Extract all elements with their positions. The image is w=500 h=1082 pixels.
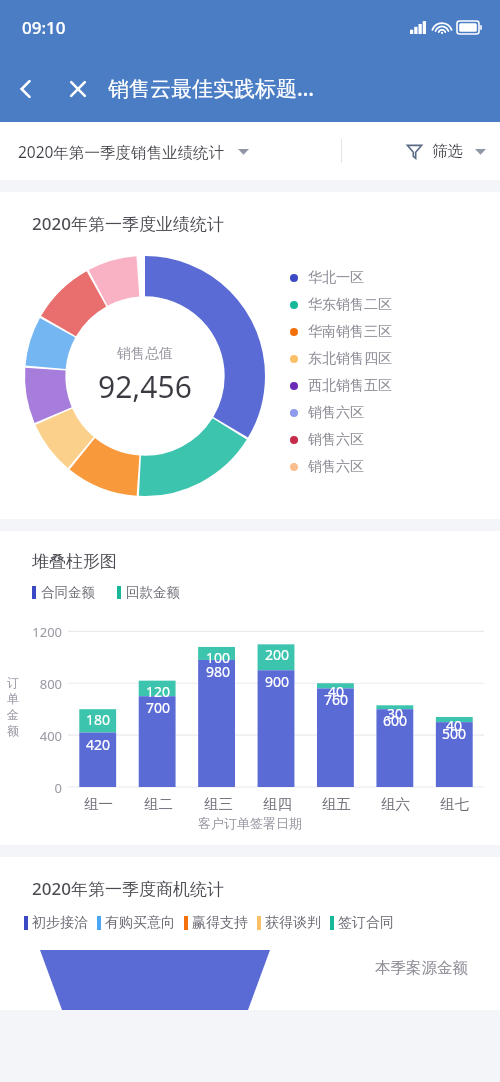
- staticText: 2020年第一季度销售业绩统计: [18, 141, 224, 162]
- staticText: 华东销售二区: [308, 296, 392, 314]
- staticText: 初步接洽: [32, 914, 88, 932]
- staticText: 0: [22, 779, 62, 797]
- staticText: 西北销售五区: [308, 377, 392, 395]
- staticText: 100: [206, 648, 231, 667]
- staticText: 400: [22, 727, 62, 745]
- staticText: 销售六区: [308, 404, 364, 422]
- staticText: 合同金额: [41, 584, 95, 601]
- staticText: 华南销售三区: [308, 323, 392, 341]
- staticText: 800: [22, 675, 62, 693]
- staticText: 赢得支持: [192, 914, 248, 932]
- staticText: 30: [387, 704, 404, 723]
- staticText: 有购买意向: [105, 914, 175, 932]
- staticText: 销售六区: [308, 431, 364, 449]
- staticText: 东北销售四区: [308, 350, 392, 368]
- staticText: 1200: [22, 623, 62, 641]
- staticText: 2020年第一季度业绩统计: [32, 212, 224, 235]
- staticText: 销售总值: [117, 345, 173, 363]
- staticText: 客户订单签署日期: [0, 815, 500, 831]
- staticText: 09:10: [22, 16, 66, 39]
- staticText: 华北一区: [308, 269, 364, 287]
- staticText: 2020年第一季度商机统计: [32, 877, 224, 900]
- staticText: 120: [146, 682, 171, 701]
- staticText: 200: [265, 645, 290, 664]
- staticText: 组三: [204, 795, 233, 813]
- staticText: 组六: [381, 795, 410, 813]
- staticText: 组七: [440, 795, 469, 813]
- staticText: 堆叠柱形图: [32, 551, 117, 572]
- staticText: 签订合同: [338, 914, 394, 932]
- staticText: 980: [206, 662, 231, 681]
- staticText: 组二: [144, 795, 173, 813]
- staticText: 销售云最佳实践标题…: [108, 74, 315, 103]
- staticText: 回款金额: [126, 584, 180, 601]
- staticText: 组四: [263, 795, 292, 813]
- staticText: 900: [265, 672, 290, 691]
- staticText: 订单金额: [6, 675, 20, 739]
- button[interactable]: Back: [0, 63, 52, 115]
- staticText: 40: [328, 682, 345, 701]
- staticText: 500: [442, 724, 467, 743]
- staticText: 92,456: [98, 366, 192, 407]
- staticText: 本季案源金额: [375, 958, 468, 978]
- button[interactable]: Close: [52, 63, 104, 115]
- staticText: 180: [86, 710, 111, 729]
- button[interactable]: 筛选: [406, 141, 486, 161]
- staticText: 组五: [322, 795, 351, 813]
- staticText: 组一: [84, 795, 113, 813]
- staticText: 700: [146, 698, 171, 717]
- staticText: 40: [446, 716, 463, 735]
- staticText: 420: [86, 735, 111, 754]
- staticText: 760: [324, 690, 349, 709]
- staticText: 600: [383, 711, 408, 730]
- staticText: 获得谈判: [265, 914, 321, 932]
- staticText: 销售六区: [308, 458, 364, 476]
- button[interactable]: 2020年第一季度销售业绩统计: [18, 141, 249, 162]
- staticText: 筛选: [432, 141, 463, 161]
